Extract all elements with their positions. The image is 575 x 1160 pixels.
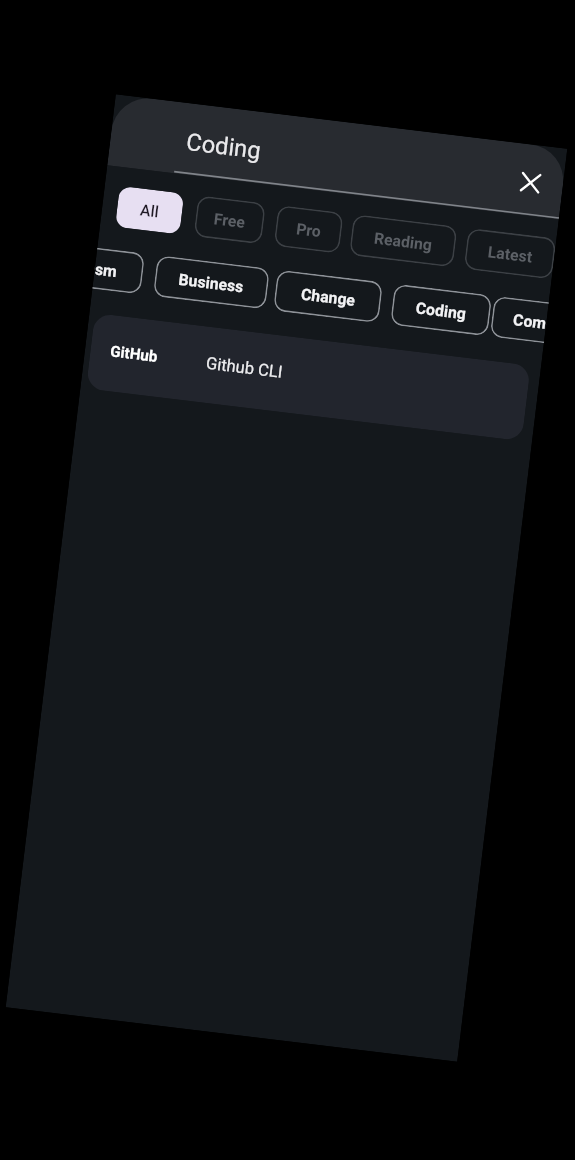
staticText: Reading	[373, 229, 433, 254]
button[interactable]: All	[115, 186, 184, 234]
button[interactable]: Free	[193, 195, 266, 244]
button[interactable]: Change	[273, 270, 383, 323]
staticText: Pro	[295, 219, 323, 240]
staticText: Change	[300, 284, 357, 309]
staticText: All	[139, 200, 160, 221]
button[interactable]: Clear search	[511, 163, 550, 202]
button[interactable]: Journalism	[92, 248, 145, 294]
button[interactable]: GitHub	[86, 313, 531, 441]
staticText: Community	[512, 310, 547, 332]
staticText: Coding	[185, 128, 263, 164]
button[interactable]: Business	[153, 255, 270, 310]
button[interactable]: Pro	[274, 205, 344, 254]
staticText: Github CLI	[205, 354, 284, 383]
button[interactable]: Coding	[390, 284, 492, 336]
staticText: Business	[178, 270, 245, 296]
button[interactable]: Community	[490, 296, 549, 343]
button[interactable]: Latest	[464, 228, 556, 279]
staticText: Journalism	[94, 260, 119, 280]
staticText: GitHub	[109, 342, 159, 366]
staticText: Latest	[487, 242, 534, 266]
button[interactable]: Reading	[349, 214, 458, 267]
staticText: Coding	[415, 298, 467, 322]
staticText: Free	[213, 209, 246, 231]
